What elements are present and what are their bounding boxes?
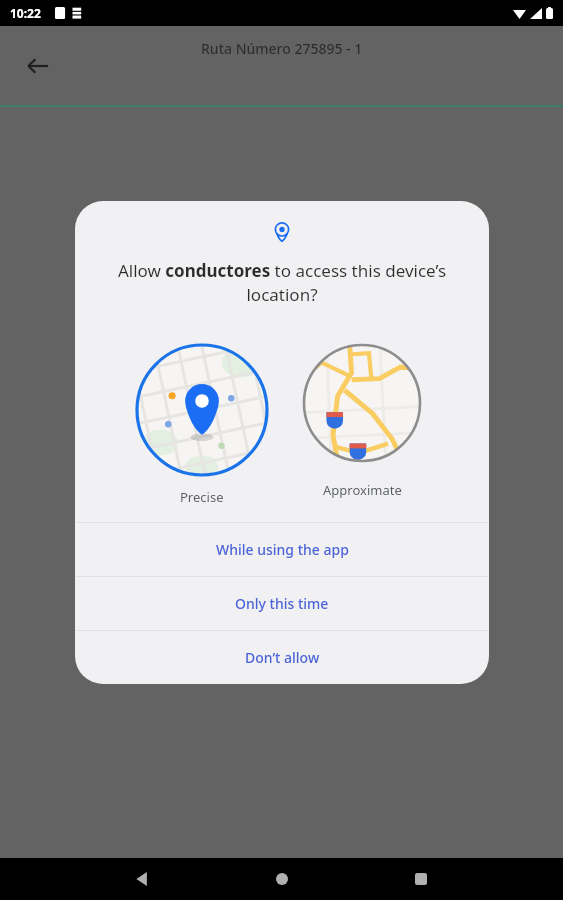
button[interactable]: Home [260, 858, 304, 900]
staticText: While using the app [216, 540, 349, 559]
other: Location [272, 222, 292, 242]
staticText: Don’t allow [245, 648, 320, 667]
staticText: Approximate [323, 481, 402, 499]
staticText: Precise [180, 488, 224, 506]
button[interactable]: Back [14, 42, 62, 90]
button[interactable]: Only this time [75, 577, 489, 630]
button[interactable]: While using the app [75, 523, 489, 576]
button[interactable]: Don’t allow [75, 631, 489, 684]
button[interactable]: Approximate [292, 338, 432, 503]
staticText: Ruta Número 275895 - 1 [201, 39, 363, 58]
staticText: 10:22 [10, 5, 41, 21]
button[interactable]: Back [120, 858, 164, 900]
button[interactable]: Precise [132, 338, 272, 510]
staticText: Only this time [235, 594, 329, 613]
staticText: Allow conductores to access this device’… [103, 259, 461, 306]
button[interactable]: Recents [399, 858, 443, 900]
